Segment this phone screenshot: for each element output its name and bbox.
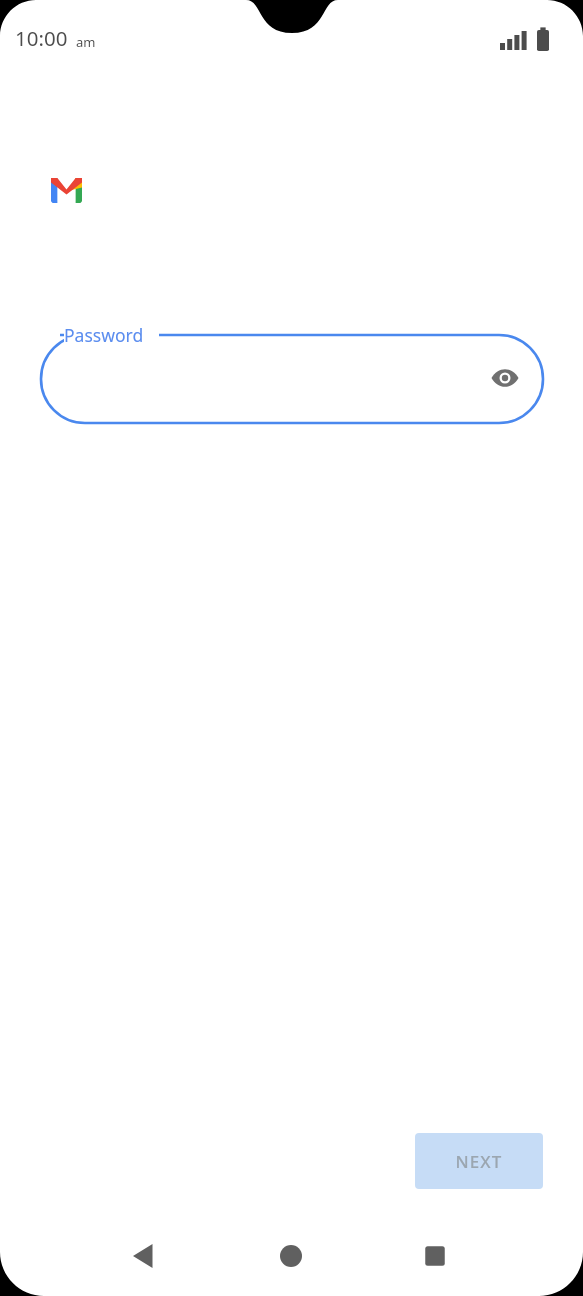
staticText: am [76, 33, 96, 51]
button[interactable]: Recent apps [405, 1226, 465, 1286]
button[interactable]: Home [261, 1226, 321, 1286]
button[interactable]: Password input field [41, 335, 543, 423]
button[interactable]: Back [113, 1226, 173, 1286]
button[interactable]: NEXT [415, 1133, 543, 1189]
staticText: 10:00 [15, 24, 68, 52]
button[interactable]: Show password [481, 354, 529, 402]
staticText: Password [64, 323, 144, 347]
staticText: NEXT [455, 1150, 503, 1173]
